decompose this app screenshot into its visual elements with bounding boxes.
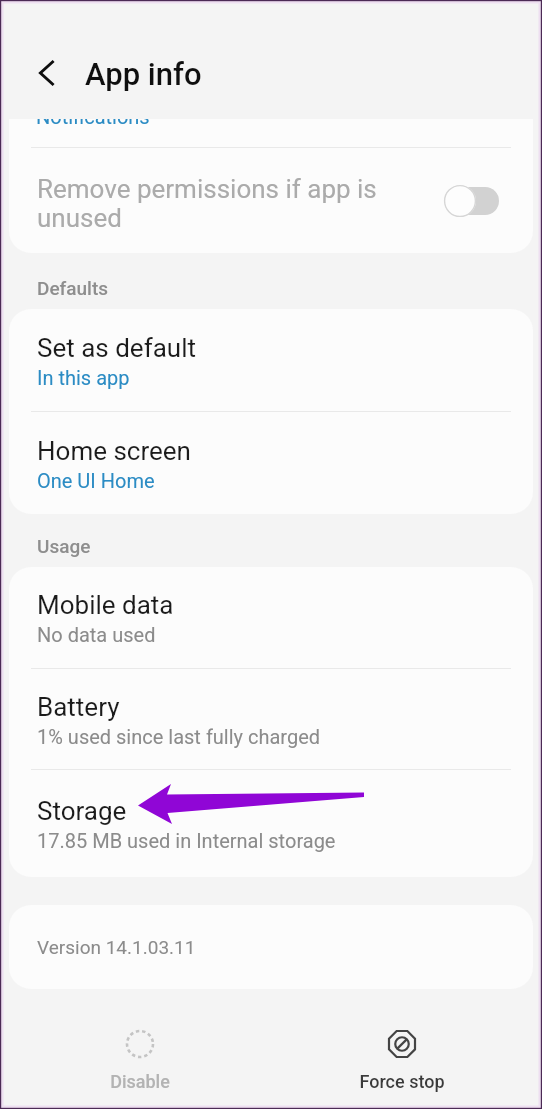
staticText: 1% used since last fully charged	[37, 725, 321, 748]
staticText: Notifications	[36, 119, 150, 128]
button[interactable]: Back	[22, 48, 72, 98]
staticText: 17.85 MB used in Internal storage	[37, 829, 336, 852]
button[interactable]: Set as default	[9, 309, 533, 411]
button[interactable]: Battery	[9, 669, 533, 769]
staticText: Set as default	[37, 333, 196, 363]
staticText: Defaults	[37, 277, 109, 299]
button[interactable]: Home screen	[9, 412, 533, 514]
staticText: Mobile data	[37, 590, 174, 620]
button[interactable]: Storage	[9, 770, 533, 877]
button[interactable]: Mobile data	[9, 567, 533, 668]
staticText: No data used	[37, 623, 156, 646]
staticText: Storage	[37, 796, 127, 826]
staticText: Home screen	[37, 436, 191, 466]
staticText: In this app	[37, 366, 130, 389]
staticText: Remove permissions if app is unused	[37, 174, 444, 233]
staticText: Usage	[37, 535, 91, 557]
staticText: Force stop	[359, 1071, 445, 1092]
button[interactable]: Remove permissions if app is unused	[9, 148, 533, 253]
staticText: One UI Home	[37, 469, 155, 492]
staticText: Battery	[37, 692, 120, 722]
button[interactable]: Force stop	[302, 989, 502, 1109]
staticText: Version 14.1.03.11	[37, 936, 196, 958]
button[interactable]: Disable	[40, 989, 240, 1109]
staticText: Disable	[110, 1071, 170, 1092]
staticText: App info	[85, 56, 202, 92]
